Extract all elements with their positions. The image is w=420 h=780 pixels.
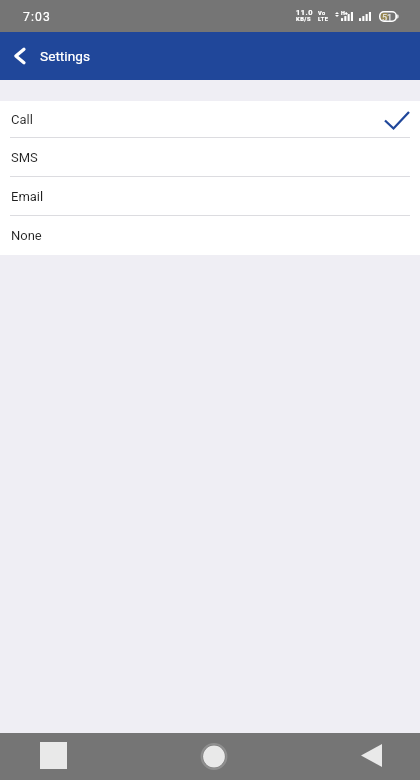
button[interactable]: Email bbox=[0, 177, 420, 216]
staticText: Vo bbox=[318, 10, 326, 17]
staticText: 7:03 bbox=[23, 10, 51, 24]
staticText: H+ bbox=[341, 10, 348, 16]
staticText: 51 bbox=[382, 13, 393, 24]
staticText: Email bbox=[11, 189, 44, 204]
staticText: None bbox=[11, 228, 42, 243]
staticText: SMS bbox=[11, 150, 38, 165]
button[interactable]: Recent apps bbox=[23, 733, 83, 780]
button[interactable]: None bbox=[0, 216, 420, 254]
button[interactable]: Back bbox=[341, 733, 401, 780]
button[interactable]: SMS bbox=[0, 138, 420, 177]
staticText: Settings bbox=[40, 48, 90, 64]
staticText: Call bbox=[11, 112, 33, 127]
button[interactable]: Back bbox=[0, 32, 39, 80]
staticText: 11.0 bbox=[296, 8, 314, 17]
staticText: KB/S bbox=[296, 16, 312, 23]
staticText: LTE bbox=[318, 16, 329, 23]
button[interactable]: Call bbox=[0, 101, 420, 138]
button[interactable]: Home bbox=[184, 733, 244, 780]
